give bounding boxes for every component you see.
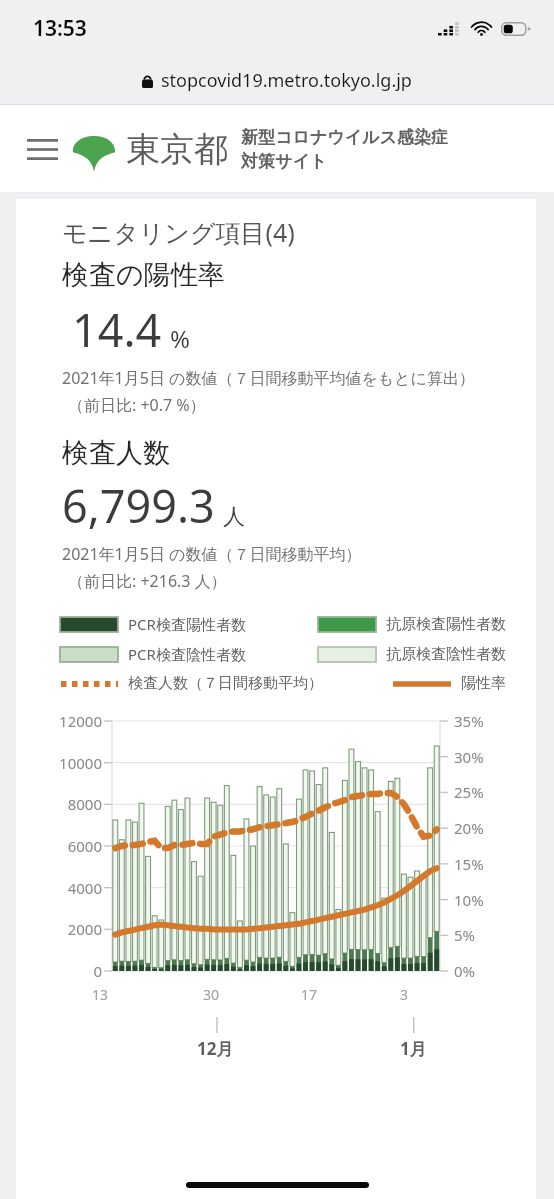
staticText: 抗原検査陰性者数 [386,645,506,664]
staticText: 0 [16,961,102,981]
staticText: モニタリング項目(4) [62,215,295,249]
staticText: 8000 [16,794,102,814]
staticText: 5% [454,925,536,945]
staticText: 10% [454,890,536,910]
staticText: 人 [223,503,245,531]
staticText: PCR検査陽性者数 [128,614,246,634]
staticText: stopcovid19.metro.tokyo.lg.jp [161,68,412,93]
staticText: 14.4 [72,299,162,360]
staticText: 30% [454,747,536,767]
staticText: 4000 [16,878,102,898]
staticText: 陽性率 [461,674,506,693]
button[interactable]: Menu [20,127,64,171]
staticText: 検査の陽性率 [62,258,225,292]
staticText: 12000 [16,711,102,731]
staticText: 13:53 [33,14,87,43]
staticText: 17 [301,985,318,1004]
staticText: 検査人数（７日間移動平均） [128,674,323,693]
staticText: 検査人数 [62,436,170,470]
button[interactable]: stopcovid19.metro.tokyo.lg.jp [0,57,554,104]
staticText: 0% [454,961,536,981]
staticText: 10000 [16,753,102,773]
staticText: 対策サイト [241,151,328,172]
staticText: % [170,322,190,355]
staticText: 3 [400,985,409,1004]
staticText: 2021年1月5日 の数値（７日間移動平均値をもとに算出） [62,367,475,389]
staticText: 2021年1月5日 の数値（７日間移動平均） [62,543,362,565]
staticText: 15% [454,854,536,874]
staticText: 6000 [16,836,102,856]
staticText: 新型コロナウイルス感染症 [241,127,448,148]
staticText: （前日比: +0.7 %） [68,394,206,416]
staticText: 1月 [400,1037,427,1060]
staticText: （前日比: +216.3 人） [68,570,227,592]
staticText: PCR検査陰性者数 [128,644,246,664]
staticText: 20% [454,818,536,838]
staticText: 6,799.3 [62,475,215,536]
staticText: 東京都 [126,128,228,171]
staticText: 30 [203,985,220,1004]
staticText: 25% [454,782,536,802]
staticText: 35% [454,711,536,731]
staticText: 2000 [16,919,102,939]
staticText: 13 [92,985,109,1004]
staticText: 12月 [197,1037,234,1060]
staticText: 抗原検査陽性者数 [386,615,506,634]
